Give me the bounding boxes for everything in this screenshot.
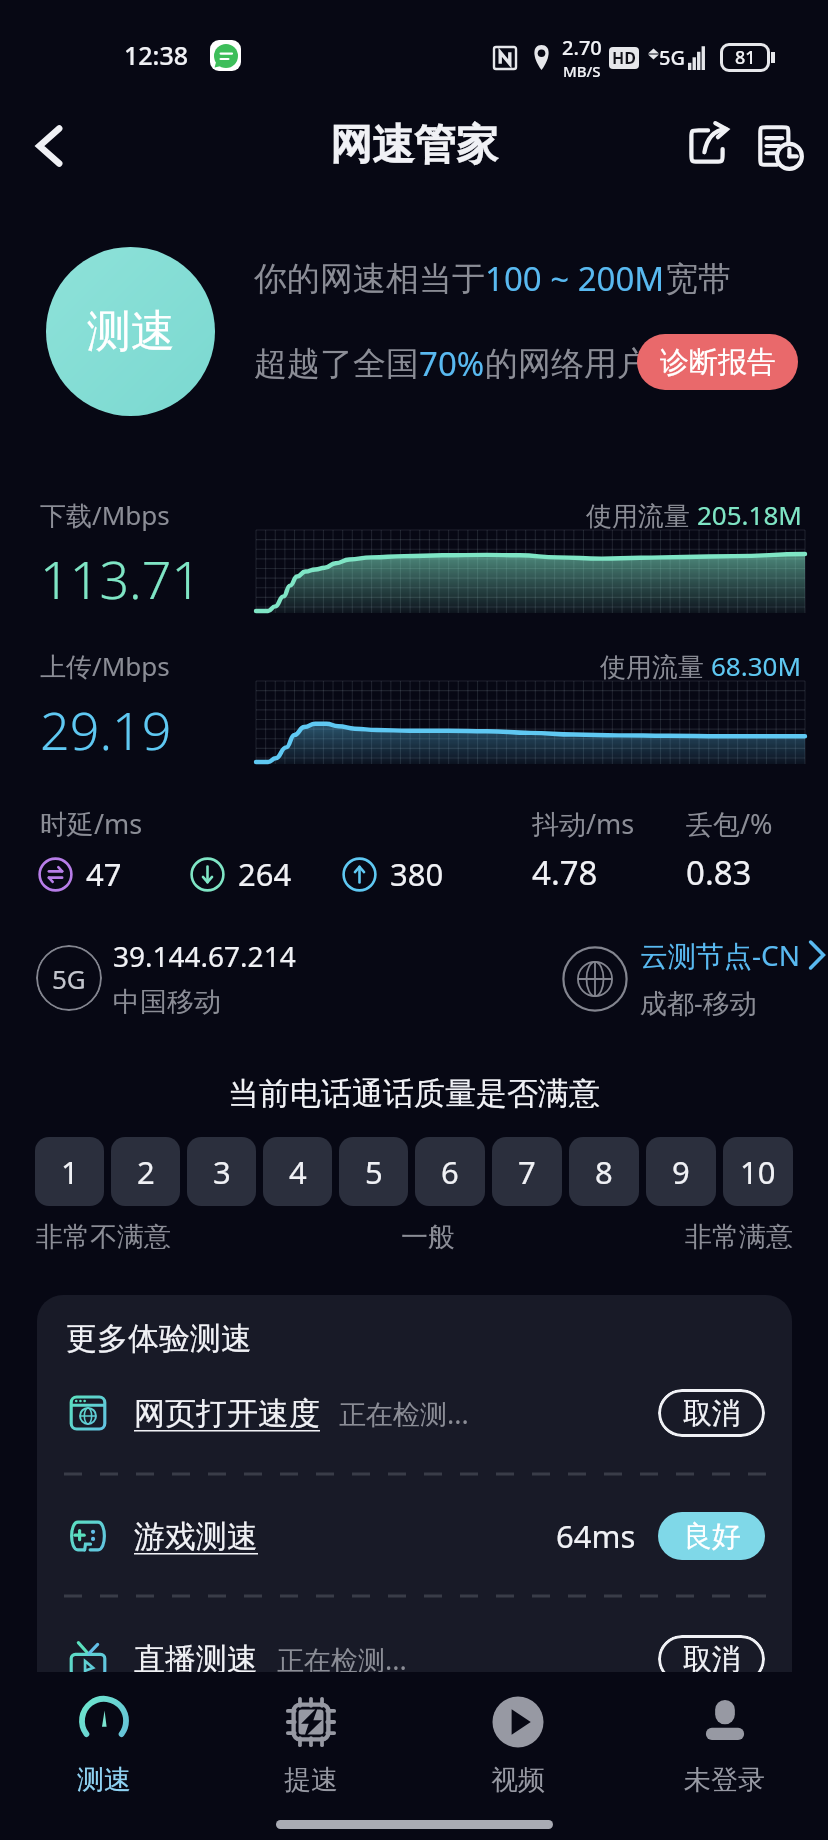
button[interactable]: 2 [111, 1137, 180, 1206]
staticText: 成都-移动 [640, 984, 757, 1021]
staticText: 抖动/ms [532, 805, 635, 842]
button[interactable]: 测速 [46, 247, 215, 416]
button[interactable]: 9 [646, 1137, 716, 1206]
staticText: 39.144.67.214 [113, 937, 296, 975]
staticText: 正在检测... [277, 1641, 407, 1678]
staticText: 良好 [683, 1518, 741, 1555]
staticText: 测速 [87, 304, 175, 359]
staticText: 7 [518, 1151, 536, 1193]
staticText: 5 [365, 1151, 383, 1193]
staticText: 4.78 [532, 850, 598, 895]
staticText: 3 [213, 1151, 231, 1193]
staticText: 70% [419, 341, 485, 386]
staticText: 81 [735, 45, 756, 70]
staticText: 100 ~ 200M [485, 256, 665, 301]
button[interactable]: 1 [35, 1137, 104, 1206]
staticText: HD [612, 47, 636, 69]
staticText: 380 [390, 853, 444, 895]
staticText: 取消 [683, 1641, 741, 1678]
staticText: 264 [238, 853, 292, 895]
staticText: 68.30M [711, 648, 802, 683]
staticText: 的网络用户 [485, 343, 650, 385]
staticText: 47 [86, 853, 122, 895]
staticText: 4 [289, 1151, 307, 1193]
staticText: 使用流量 [600, 648, 711, 684]
staticText: 超越了全国 [254, 343, 419, 385]
staticText: 12:38 [124, 38, 189, 72]
staticText: 视频 [491, 1763, 545, 1797]
button[interactable]: Back [15, 111, 85, 181]
button[interactable]: 未登录 [621, 1693, 828, 1797]
staticText: 你的网速相当于 [254, 258, 485, 300]
button[interactable]: 视频 [414, 1693, 621, 1797]
staticText: 上传/Mbps [40, 648, 170, 684]
staticText: 29.19 [40, 694, 172, 765]
staticText: 下载/Mbps [40, 497, 170, 533]
staticText: 使用流量 [586, 497, 697, 533]
staticText: 非常不满意 [36, 1220, 171, 1254]
button[interactable]: 测速 [0, 1693, 207, 1797]
staticText: 0.83 [686, 850, 752, 895]
staticText: 游戏测速 [134, 1517, 258, 1556]
button[interactable]: 诊断报告 [637, 334, 798, 390]
button[interactable]: 7 [492, 1137, 562, 1206]
staticText: 诊断报告 [660, 344, 776, 381]
button[interactable]: 3 [187, 1137, 256, 1206]
button[interactable]: 直播测速 [37, 1621, 792, 1697]
button[interactable]: 4 [263, 1137, 332, 1206]
button[interactable]: 云测节点-CN [562, 936, 827, 1021]
button[interactable]: 取消 [658, 1389, 765, 1437]
staticText: 更多体验测速 [66, 1319, 252, 1358]
staticText: 非常满意 [685, 1220, 793, 1254]
staticText: 6 [441, 1151, 459, 1193]
staticText: 9 [672, 1151, 690, 1193]
staticText: 网页打开速度 [134, 1394, 320, 1433]
staticText: 205.18M [697, 497, 802, 532]
button[interactable]: 8 [569, 1137, 639, 1206]
staticText: 113.71 [40, 543, 202, 614]
staticText: 测速 [77, 1763, 131, 1797]
button[interactable]: 6 [415, 1137, 485, 1206]
staticText: 正在检测... [339, 1395, 469, 1432]
staticText: 2.70 [562, 34, 602, 61]
button[interactable]: 网页打开速度 [37, 1375, 792, 1451]
staticText: 64ms [556, 1515, 636, 1557]
staticText: 未登录 [684, 1763, 765, 1797]
staticText: 时延/ms [40, 805, 143, 842]
staticText: 当前电话通话质量是否满意 [228, 1074, 600, 1113]
button[interactable]: Share [674, 113, 740, 179]
button[interactable]: 游戏测速 [37, 1498, 792, 1574]
staticText: 丢包/% [686, 805, 773, 842]
staticText: 云测节点-CN [640, 936, 800, 974]
staticText: 10 [740, 1151, 776, 1193]
staticText: 5G [52, 961, 86, 996]
staticText: 2 [137, 1151, 155, 1193]
staticText: 提速 [284, 1763, 338, 1797]
button[interactable]: 取消 [658, 1635, 765, 1683]
staticText: MB/S [563, 61, 601, 81]
staticText: 直播测速 [134, 1640, 258, 1679]
button[interactable]: 良好 [658, 1512, 765, 1560]
staticText: 网速管家 [330, 119, 498, 172]
button[interactable]: 10 [723, 1137, 793, 1206]
button[interactable]: 提速 [207, 1693, 414, 1797]
staticText: 宽带 [665, 258, 731, 300]
button[interactable]: 5 [339, 1137, 408, 1206]
staticText: 取消 [683, 1395, 741, 1432]
staticText: 中国移动 [113, 985, 221, 1019]
staticText: 5G [659, 44, 685, 71]
button[interactable]: History report [746, 113, 812, 179]
staticText: 1 [61, 1151, 79, 1193]
staticText: 8 [595, 1151, 613, 1193]
staticText: 一般 [401, 1220, 455, 1254]
